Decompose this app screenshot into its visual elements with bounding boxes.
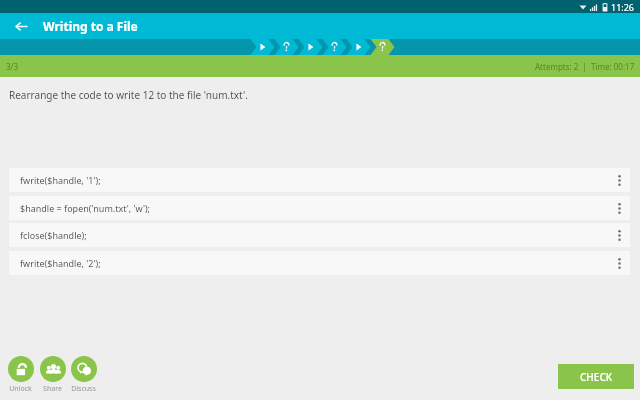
button[interactable]: More options [613, 257, 625, 269]
button[interactable]: fwrite($handle, '2'); [9, 251, 630, 275]
button[interactable]: More options [613, 202, 625, 214]
staticText: CHECK [580, 370, 613, 384]
staticText: fwrite($handle, '1'); [20, 174, 101, 186]
button[interactable]: Unlock [4, 356, 37, 394]
staticText: fwrite($handle, '2'); [20, 257, 101, 269]
button[interactable]: More options [613, 174, 625, 186]
button[interactable]: $handle = fopen('num.txt', 'w'); [9, 196, 630, 220]
staticText: 11:26 [611, 1, 635, 13]
button[interactable]: Share [36, 356, 69, 394]
staticText: fclose($handle); [20, 229, 87, 241]
button[interactable]: fclose($handle); [9, 223, 630, 247]
staticText: Writing to a File [43, 18, 138, 34]
button[interactable]: More options [613, 229, 625, 241]
staticText: Discuss [71, 384, 96, 394]
button[interactable]: Back [12, 13, 30, 39]
staticText: 3/3 [6, 61, 19, 72]
staticText: Unlock [9, 384, 32, 394]
button[interactable]: CHECK [558, 364, 634, 389]
staticText: Share [43, 384, 62, 394]
button[interactable]: fwrite($handle, '1'); [9, 168, 630, 192]
staticText: $handle = fopen('num.txt', 'w'); [20, 202, 151, 214]
staticText: Rearrange the code to write 12 to the fi… [9, 88, 248, 102]
button[interactable]: Discuss [67, 356, 100, 394]
staticText: Attempts: 2 | Time: 00:17 [535, 61, 635, 72]
